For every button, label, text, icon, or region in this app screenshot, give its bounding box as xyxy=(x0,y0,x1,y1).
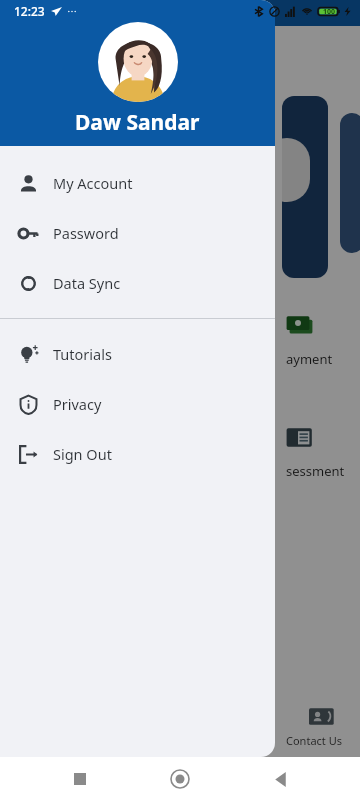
button[interactable]: sessment xyxy=(286,424,360,486)
staticText: Data Sync xyxy=(53,273,121,293)
button[interactable]: Recent apps xyxy=(60,759,100,799)
button[interactable]: Tutorials xyxy=(0,329,275,379)
button[interactable]: Contact Us xyxy=(286,704,360,752)
button[interactable]: Back xyxy=(260,759,300,799)
button[interactable]: My Account xyxy=(0,158,275,208)
button[interactable]: Privacy xyxy=(0,379,275,429)
button[interactable] xyxy=(340,113,360,253)
staticText: ayment xyxy=(286,350,333,368)
staticText: 100 xyxy=(323,7,336,17)
staticText: Tutorials xyxy=(53,344,112,364)
staticText: sessment xyxy=(286,462,345,480)
button[interactable] xyxy=(282,96,328,278)
button[interactable]: ayment xyxy=(286,312,360,374)
staticText: Sign Out xyxy=(53,444,112,464)
staticText: Password xyxy=(53,223,119,243)
button[interactable]: Home xyxy=(160,759,200,799)
button[interactable]: Data Sync xyxy=(0,258,275,308)
staticText: Contact Us xyxy=(286,733,342,748)
staticText: Privacy xyxy=(53,394,102,414)
staticText: 12:23 xyxy=(14,3,45,19)
staticText: My Account xyxy=(53,173,133,193)
staticText: Daw Sandar xyxy=(75,108,200,137)
button[interactable]: Sign Out xyxy=(0,429,275,479)
button[interactable] xyxy=(98,22,178,102)
button[interactable]: Password xyxy=(0,208,275,258)
